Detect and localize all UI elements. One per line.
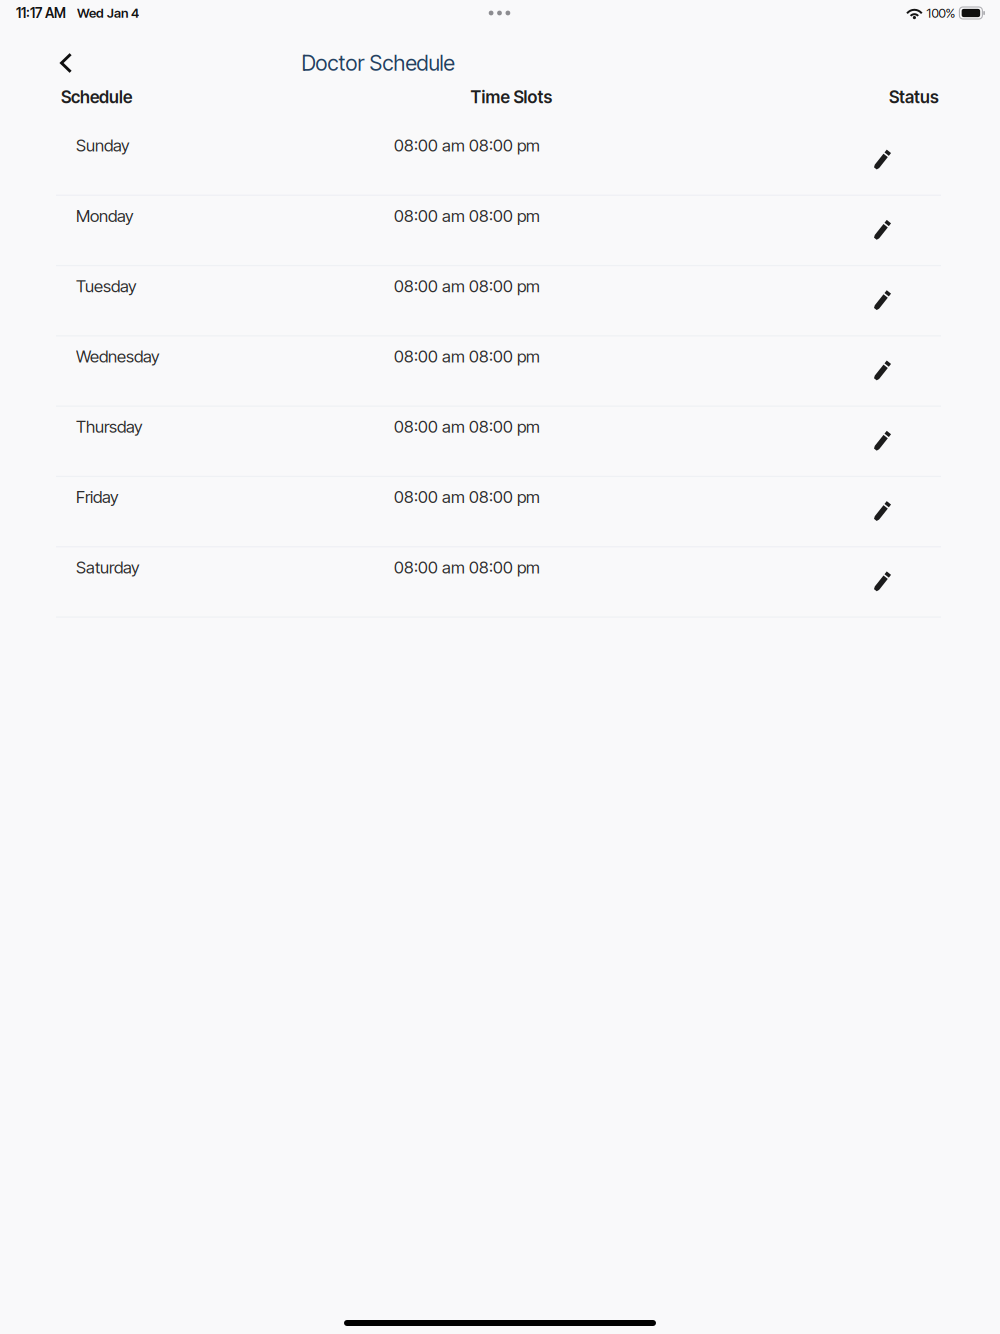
staticText: Schedule: [61, 87, 132, 107]
button[interactable]: Sunday: [56, 126, 941, 195]
staticText: 08:00 pm: [469, 416, 540, 437]
staticText: Tuesday: [76, 276, 137, 296]
staticText: 08:00 am: [394, 346, 465, 366]
staticText: 08:00 pm: [469, 135, 540, 156]
button[interactable]: Friday: [56, 477, 941, 546]
button[interactable]: Edit Sunday time slots: [860, 142, 907, 177]
staticText: 08:00 pm: [469, 346, 540, 366]
button[interactable]: Tuesday: [56, 266, 941, 335]
staticText: Friday: [76, 487, 119, 507]
staticText: 08:00 am: [394, 557, 465, 577]
button[interactable]: Monday: [56, 196, 941, 265]
staticText: Thursday: [76, 416, 143, 437]
button[interactable]: Wednesday: [56, 336, 941, 405]
staticText: 08:00 pm: [469, 557, 540, 577]
button[interactable]: Edit Friday time slots: [860, 493, 907, 528]
staticText: 100%: [926, 5, 955, 21]
staticText: Doctor Schedule: [301, 50, 454, 76]
staticText: 08:00 am: [394, 416, 465, 437]
staticText: 11:17 AM: [16, 5, 66, 21]
staticText: Time Slots: [470, 87, 552, 107]
staticText: 08:00 am: [394, 487, 465, 507]
button[interactable]: Thursday: [56, 407, 941, 476]
staticText: 08:00 am: [394, 135, 465, 156]
staticText: Saturday: [76, 557, 140, 577]
button[interactable]: Back: [0, 44, 94, 82]
staticText: Status: [889, 87, 939, 107]
button[interactable]: Edit Thursday time slots: [860, 423, 907, 458]
button[interactable]: Edit Tuesday time slots: [860, 283, 907, 318]
staticText: 08:00 pm: [469, 487, 540, 507]
button[interactable]: Edit Wednesday time slots: [860, 353, 907, 388]
staticText: Wed Jan 4: [77, 5, 139, 21]
staticText: 08:00 am: [394, 206, 465, 226]
button[interactable]: Saturday: [56, 547, 941, 616]
staticText: Monday: [76, 206, 134, 226]
staticText: Wednesday: [76, 346, 160, 366]
staticText: 08:00 pm: [469, 206, 540, 226]
staticText: Sunday: [76, 135, 130, 156]
button[interactable]: Edit Saturday time slots: [860, 564, 907, 599]
staticText: 08:00 am: [394, 276, 465, 296]
button[interactable]: Edit Monday time slots: [860, 212, 907, 247]
staticText: 08:00 pm: [469, 276, 540, 296]
